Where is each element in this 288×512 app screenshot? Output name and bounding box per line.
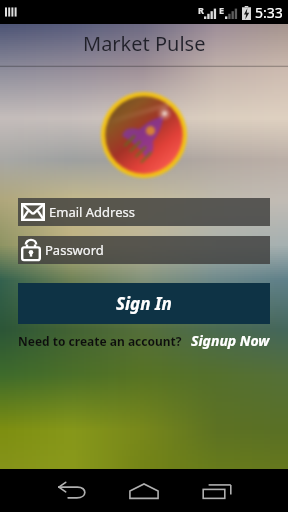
button[interactable]: Signup Now	[191, 331, 270, 350]
staticText: Sign In	[116, 292, 172, 315]
button[interactable]: Password	[18, 236, 270, 264]
staticText: Email Address	[49, 203, 135, 221]
staticText: Market Pulse	[83, 30, 206, 57]
staticText: R	[198, 4, 204, 16]
button[interactable]: Email Address	[18, 198, 270, 226]
staticText: 5:33	[255, 3, 283, 22]
staticText: Need to create an account?	[18, 333, 182, 349]
button[interactable]: Home	[112, 469, 176, 512]
button[interactable]: Sign In	[18, 283, 270, 324]
staticText: Password	[45, 241, 104, 259]
staticText: E	[219, 4, 225, 16]
staticText: Signup Now	[191, 331, 270, 350]
button[interactable]: Recent apps	[185, 469, 249, 512]
button[interactable]: Back	[40, 469, 104, 512]
